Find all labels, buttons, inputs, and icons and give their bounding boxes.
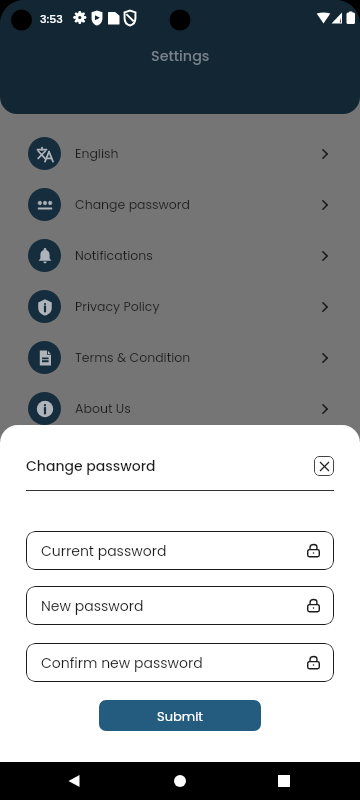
button[interactable]: Terms & Condition bbox=[0, 332, 360, 383]
button[interactable]: Notifications bbox=[0, 230, 360, 281]
staticText: Notifications bbox=[75, 247, 153, 264]
button[interactable]: Back bbox=[44, 762, 106, 800]
staticText: Privacy Policy bbox=[75, 298, 160, 315]
button[interactable]: English bbox=[0, 128, 360, 179]
button[interactable]: Privacy Policy bbox=[0, 281, 360, 332]
staticText: English bbox=[75, 145, 119, 162]
button[interactable]: Recent apps bbox=[253, 762, 315, 800]
staticText: About Us bbox=[75, 400, 131, 417]
button[interactable]: New password bbox=[26, 586, 334, 625]
button[interactable]: Submit bbox=[99, 700, 261, 731]
button[interactable]: Home bbox=[149, 762, 211, 800]
staticText: New password bbox=[41, 596, 144, 616]
button[interactable]: Confirm new password bbox=[26, 643, 334, 682]
staticText: 3:53 bbox=[40, 11, 63, 26]
staticText: Confirm new password bbox=[41, 653, 203, 673]
button[interactable]: Current password bbox=[26, 531, 334, 570]
staticText: Current password bbox=[41, 541, 167, 561]
staticText: Submit bbox=[157, 707, 204, 725]
button[interactable]: About Us bbox=[0, 383, 360, 434]
staticText: Settings bbox=[151, 46, 210, 66]
staticText: Change password bbox=[75, 196, 190, 213]
button[interactable]: Change password bbox=[0, 179, 360, 230]
button[interactable]: Close bbox=[314, 456, 334, 476]
staticText: Change password bbox=[26, 456, 156, 476]
staticText: Terms & Condition bbox=[75, 349, 191, 366]
